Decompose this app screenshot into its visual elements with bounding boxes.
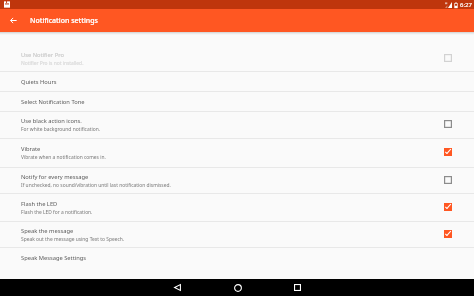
staticText: Vibrate (21, 145, 41, 153)
staticText: 6:27 (460, 1, 472, 9)
button[interactable]: Notify for every message (0, 168, 474, 193)
button[interactable]: Checked (441, 145, 455, 159)
button[interactable]: Flash the LED (0, 194, 474, 221)
button[interactable]: Unchecked (441, 51, 455, 65)
button[interactable]: Select Notification Tone (0, 92, 474, 111)
staticText: Flash the LED (21, 200, 58, 208)
staticText: Notification settings (30, 16, 98, 26)
staticText: If unchecked, no sound/vibration until l… (21, 182, 171, 189)
staticText: Notifier Pro is not installed. (21, 60, 84, 67)
button[interactable]: Unchecked (441, 173, 455, 187)
button[interactable]: Checked (441, 200, 455, 214)
button[interactable]: Back (169, 279, 186, 296)
button[interactable]: Recents (289, 279, 306, 296)
button[interactable]: Quiets Hours (0, 72, 474, 91)
staticText: Speak Message Settings (21, 254, 87, 262)
staticText: Flash the LED for a notification. (21, 209, 93, 216)
staticText: Speak the message (21, 227, 74, 235)
button[interactable]: Vibrate (0, 139, 474, 167)
staticText: Speak out the message using Text to Spee… (21, 236, 125, 243)
staticText: Notify for every message (21, 173, 89, 181)
staticText: Select Notification Tone (21, 98, 85, 106)
button[interactable]: Speak the message (0, 222, 474, 247)
staticText: For white background notification. (21, 126, 100, 133)
button[interactable]: Unchecked (441, 117, 455, 131)
staticText: Quiets Hours (21, 78, 57, 86)
staticText: Use Notifier Pro (21, 51, 64, 59)
button[interactable]: Checked (441, 227, 455, 241)
staticText: Vibrate when a notification comes in. (21, 154, 106, 161)
button[interactable]: Home (229, 279, 246, 296)
button[interactable]: Back (2, 9, 25, 32)
staticText: Use black action icons. (21, 117, 82, 125)
button[interactable]: Use black action icons. (0, 112, 474, 138)
button[interactable]: Use Notifier Pro (0, 32, 474, 71)
button[interactable]: Speak Message Settings (0, 248, 474, 268)
